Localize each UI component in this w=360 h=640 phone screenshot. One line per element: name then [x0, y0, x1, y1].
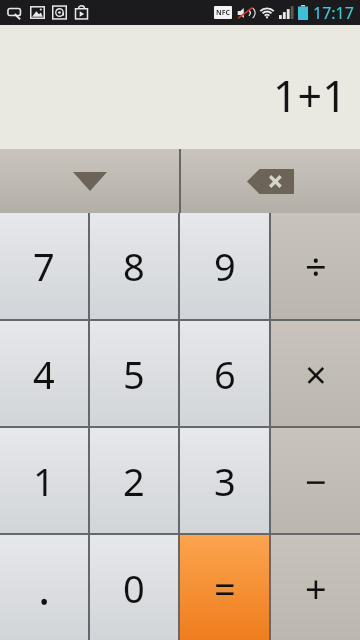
- staticText: 17:17: [313, 2, 354, 24]
- staticText: 8: [123, 240, 145, 292]
- button[interactable]: .: [0, 535, 88, 640]
- staticText: 2: [123, 455, 145, 507]
- staticText: =: [214, 562, 236, 614]
- button[interactable]: 1: [0, 428, 88, 533]
- button[interactable]: =: [180, 535, 269, 640]
- staticText: 3: [214, 455, 236, 507]
- button[interactable]: Backspace: [181, 149, 360, 213]
- button[interactable]: −: [271, 428, 360, 533]
- button[interactable]: 9: [180, 213, 269, 319]
- staticText: 0: [123, 562, 145, 614]
- button[interactable]: ×: [271, 321, 360, 426]
- button[interactable]: ÷: [271, 213, 360, 319]
- button[interactable]: 8: [90, 213, 178, 319]
- button[interactable]: Dropdown: [0, 149, 179, 213]
- button[interactable]: +: [271, 535, 360, 640]
- staticText: −: [305, 455, 327, 507]
- staticText: ×: [305, 348, 327, 400]
- button[interactable]: 4: [0, 321, 88, 426]
- staticText: 1: [33, 455, 55, 507]
- staticText: +: [305, 562, 327, 614]
- button[interactable]: 5: [90, 321, 178, 426]
- button[interactable]: 7: [0, 213, 88, 319]
- staticText: 9: [214, 240, 236, 292]
- staticText: 5: [123, 348, 145, 400]
- button[interactable]: 0: [90, 535, 178, 640]
- button[interactable]: 3: [180, 428, 269, 533]
- staticText: 6: [214, 348, 236, 400]
- button[interactable]: 6: [180, 321, 269, 426]
- staticText: 7: [33, 240, 55, 292]
- button[interactable]: 2: [90, 428, 178, 533]
- staticText: ÷: [305, 240, 327, 292]
- staticText: NFC: [216, 8, 231, 18]
- staticText: .: [38, 556, 51, 619]
- staticText: 1+1: [273, 66, 347, 125]
- staticText: 4: [33, 348, 55, 400]
